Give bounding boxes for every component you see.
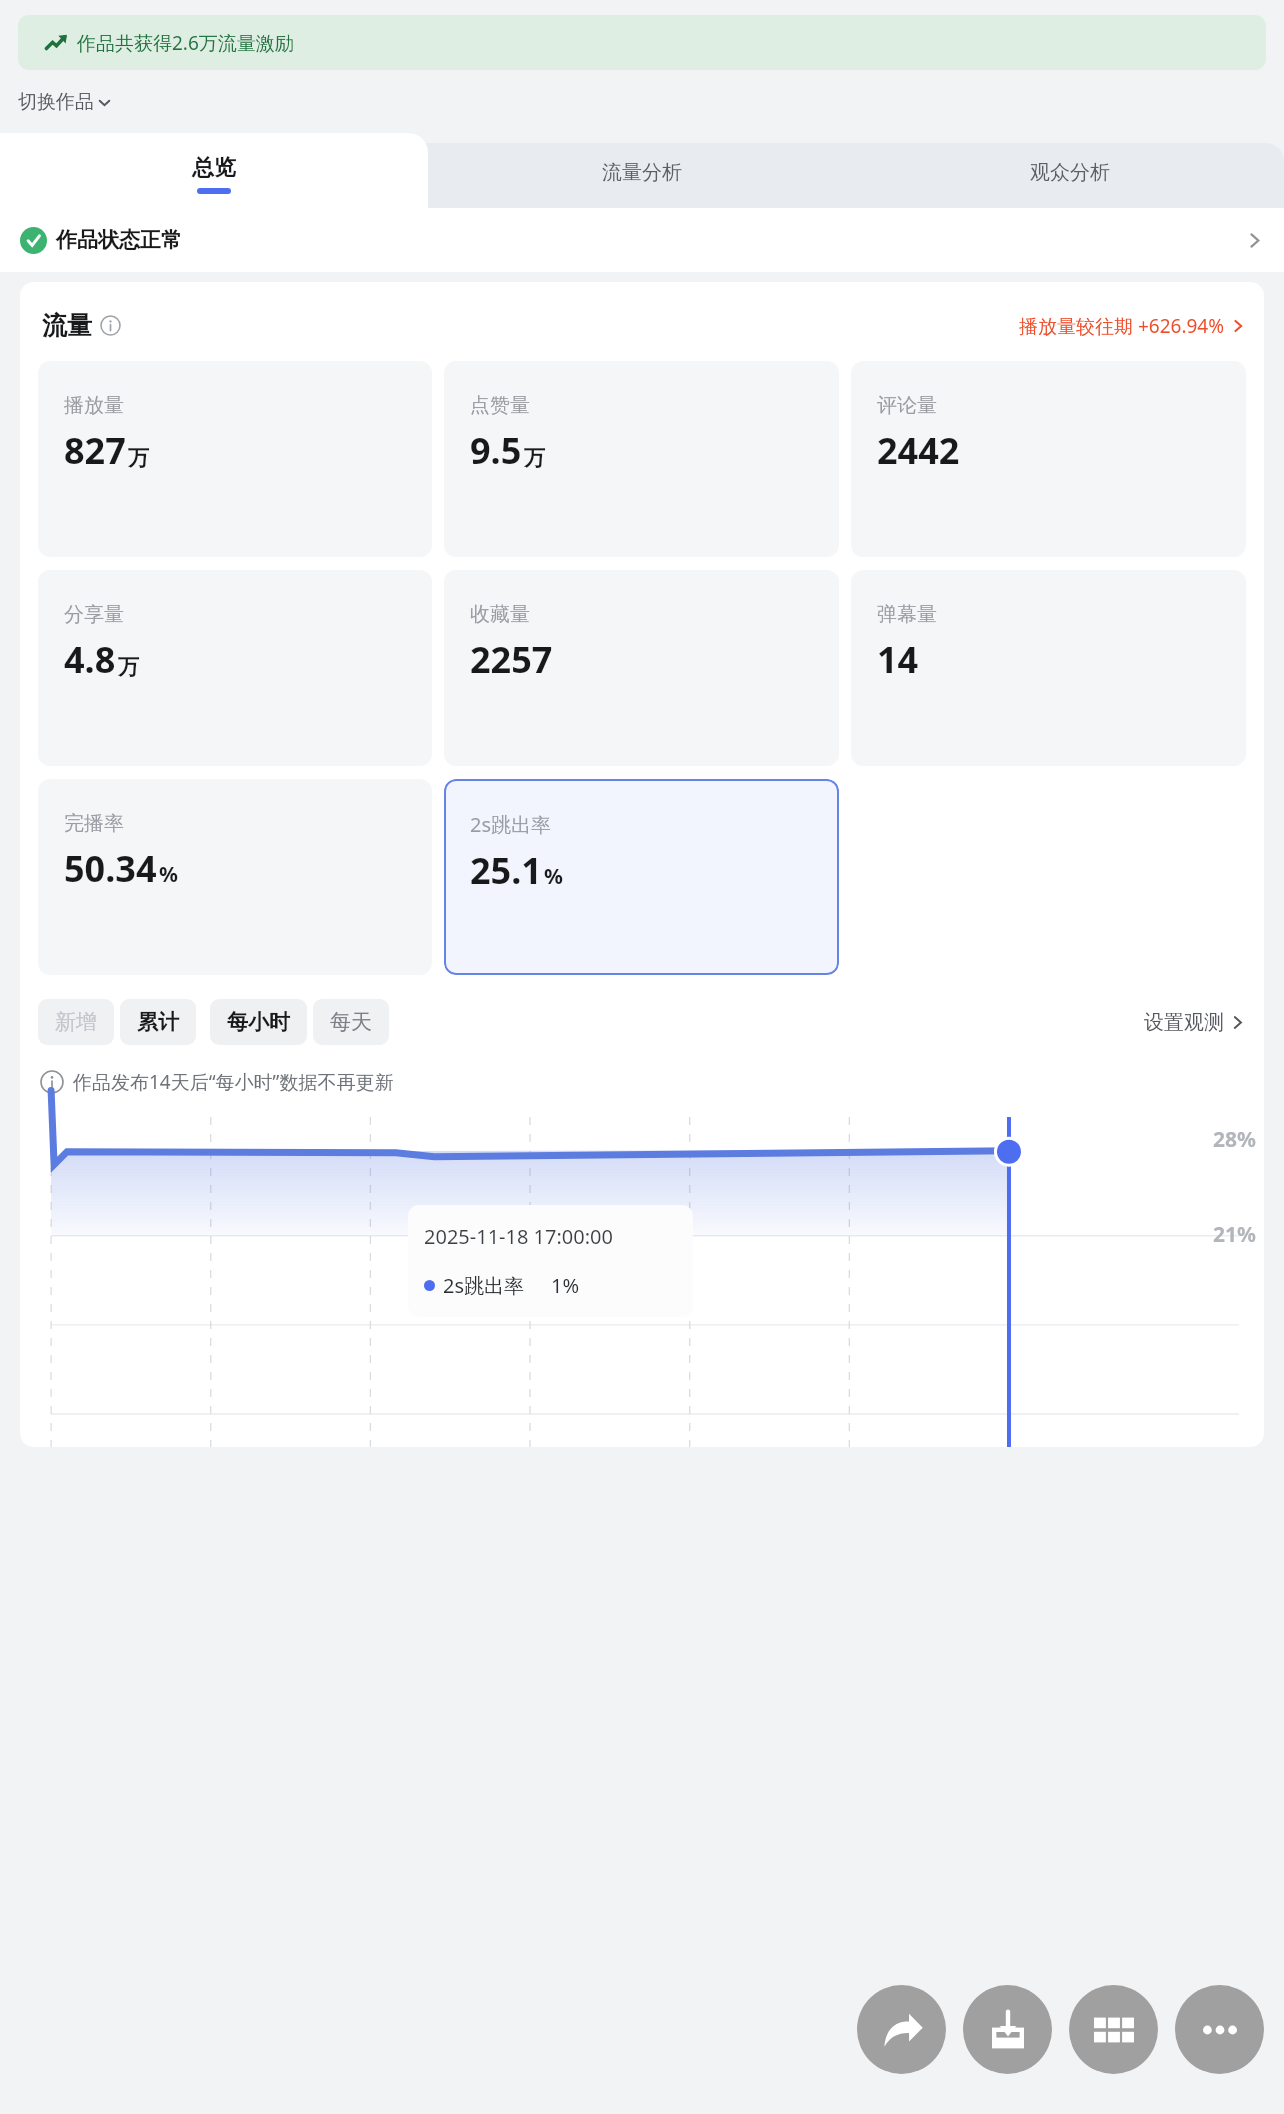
button[interactable]: 流量分析 bbox=[428, 133, 856, 208]
staticText: 9.5 bbox=[470, 426, 522, 475]
staticText: 点赞量 bbox=[470, 393, 530, 418]
staticText: 新增 bbox=[55, 1009, 97, 1035]
staticText: 14 bbox=[877, 635, 919, 684]
staticText: 827 bbox=[64, 426, 126, 475]
button[interactable]: 播放量 bbox=[38, 361, 432, 557]
button[interactable]: 更多 bbox=[1175, 1985, 1264, 2074]
staticText: 作品状态正常 bbox=[56, 227, 182, 253]
button[interactable]: 每天 bbox=[313, 999, 389, 1045]
button[interactable]: 弹幕量 bbox=[851, 570, 1246, 766]
staticText: 2s跳出率 bbox=[443, 1272, 525, 1299]
staticText: 2442 bbox=[877, 426, 960, 475]
staticText: 播放量 bbox=[64, 393, 124, 418]
button[interactable]: 网格 bbox=[1069, 1985, 1158, 2074]
staticText: 2025-11-18 17:00:00 bbox=[424, 1223, 613, 1250]
staticText: 切换作品 bbox=[18, 90, 94, 114]
staticText: 28% bbox=[1213, 1125, 1256, 1154]
staticText: 万 bbox=[118, 654, 139, 680]
staticText: 1% bbox=[551, 1272, 580, 1299]
button[interactable]: 信息 bbox=[100, 315, 121, 336]
staticText: 万 bbox=[524, 445, 545, 471]
staticText: 21% bbox=[1213, 1220, 1256, 1249]
staticText: 50.34 bbox=[64, 844, 157, 893]
button[interactable]: 每小时 bbox=[210, 999, 307, 1045]
staticText: 累计 bbox=[137, 1009, 179, 1035]
staticText: 每小时 bbox=[227, 1009, 290, 1035]
staticText: 25.1 bbox=[470, 846, 542, 895]
staticText: 每天 bbox=[330, 1009, 372, 1035]
button[interactable]: 分享量 bbox=[38, 570, 432, 766]
staticText: 观众分析 bbox=[1030, 160, 1110, 185]
button[interactable]: 总览 bbox=[0, 133, 428, 208]
button[interactable]: 2s跳出率 bbox=[444, 779, 839, 975]
staticText: 分享量 bbox=[64, 602, 124, 627]
button[interactable]: 观众分析 bbox=[856, 133, 1284, 208]
staticText: 设置观测 bbox=[1144, 1010, 1224, 1035]
staticText: 收藏量 bbox=[470, 602, 530, 627]
staticText: 总览 bbox=[192, 154, 236, 182]
staticText: 播放量较往期 +626.94% bbox=[1019, 313, 1225, 339]
button[interactable]: 评论量 bbox=[851, 361, 1246, 557]
staticText: 2257 bbox=[470, 635, 553, 684]
staticText: 评论量 bbox=[877, 393, 937, 418]
button[interactable]: 完播率 bbox=[38, 779, 432, 975]
button[interactable]: 播放量较往期 +626.94% bbox=[1019, 313, 1246, 339]
button[interactable]: 作品共获得2.6万流量激励 bbox=[18, 15, 1266, 70]
button[interactable]: 设置观测 bbox=[1144, 1010, 1246, 1035]
staticText: 2s跳出率 bbox=[470, 811, 552, 838]
staticText: % bbox=[544, 862, 563, 891]
button[interactable]: 切换作品 bbox=[18, 90, 112, 114]
button[interactable]: 下载 bbox=[963, 1985, 1052, 2074]
staticText: % bbox=[159, 860, 178, 889]
button[interactable]: 分享 bbox=[857, 1985, 946, 2074]
button[interactable]: 作品状态正常 bbox=[0, 208, 1284, 272]
staticText: 万 bbox=[128, 445, 149, 471]
staticText: 弹幕量 bbox=[877, 602, 937, 627]
staticText: 作品发布14天后“每小时”数据不再更新 bbox=[73, 1069, 394, 1095]
button[interactable]: 收藏量 bbox=[444, 570, 839, 766]
button[interactable]: 点赞量 bbox=[444, 361, 839, 557]
button[interactable]: 新增 bbox=[38, 999, 114, 1045]
staticText: 流量 bbox=[42, 310, 92, 341]
staticText: 完播率 bbox=[64, 811, 124, 836]
staticText: 4.8 bbox=[64, 635, 116, 684]
staticText: 流量分析 bbox=[602, 160, 682, 185]
staticText: 作品共获得2.6万流量激励 bbox=[77, 30, 294, 56]
button[interactable]: 累计 bbox=[120, 999, 196, 1045]
